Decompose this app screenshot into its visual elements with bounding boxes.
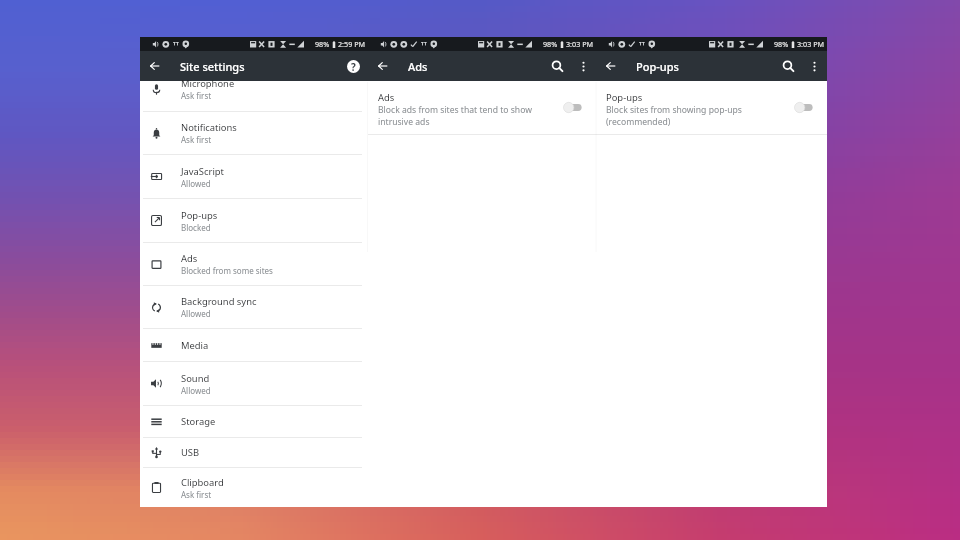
button[interactable]: Pop-ups <box>140 199 368 243</box>
staticText: Media <box>181 339 209 352</box>
staticText: Pop-ups <box>636 59 679 74</box>
staticText: JavaScript <box>181 165 224 178</box>
staticText: Block ads from sites that tend to show <box>378 104 532 116</box>
staticText: Allowed <box>181 308 211 319</box>
button[interactable]: Back <box>368 51 398 81</box>
button[interactable]: Search <box>544 53 570 79</box>
staticText: Blocked <box>181 222 211 233</box>
staticText: 3:03 PM <box>566 39 593 49</box>
staticText: Ads <box>378 91 395 104</box>
staticText: Sound <box>181 372 210 385</box>
button[interactable]: More options <box>570 53 596 79</box>
button[interactable]: Back <box>596 51 626 81</box>
button[interactable]: Notifications <box>140 112 368 155</box>
staticText: Allowed <box>181 178 211 189</box>
staticText: Block sites from showing pop-ups <box>606 104 742 116</box>
staticText: 98% <box>315 39 330 49</box>
staticText: intrusive ads <box>378 116 430 128</box>
button[interactable]: USB <box>140 438 368 468</box>
staticText: Blocked from some sites <box>181 265 273 276</box>
staticText: 98% <box>543 39 558 49</box>
staticText: Ads <box>181 252 198 265</box>
button[interactable]: Clipboard <box>140 468 368 507</box>
button[interactable]: Help <box>338 51 368 81</box>
button[interactable]: Sound <box>140 362 368 406</box>
button[interactable]: More options <box>801 53 827 79</box>
staticText: Ask first <box>181 134 212 145</box>
staticText: Notifications <box>181 121 237 134</box>
button[interactable]: JavaScript <box>140 155 368 199</box>
staticText: USB <box>181 446 200 459</box>
button[interactable]: Media <box>140 329 368 362</box>
staticText: Site settings <box>180 59 245 74</box>
staticText: ? <box>351 60 356 73</box>
staticText: Pop-ups <box>181 209 218 222</box>
staticText: Storage <box>181 415 216 428</box>
button[interactable]: Storage <box>140 406 368 438</box>
button[interactable]: Pop-ups <box>596 81 827 135</box>
staticText: 2:59 PM <box>338 39 365 49</box>
staticText: Ask first <box>181 90 212 101</box>
button[interactable]: Microphone <box>140 81 368 112</box>
staticText: Ads <box>408 59 428 74</box>
staticText: Pop-ups <box>606 91 643 104</box>
staticText: Background sync <box>181 295 257 308</box>
staticText: 3:03 PM <box>797 39 824 49</box>
button[interactable]: Background sync <box>140 286 368 329</box>
button[interactable]: Ads <box>140 243 368 286</box>
staticText: Clipboard <box>181 476 224 489</box>
staticText: (recommended) <box>606 116 671 128</box>
button[interactable]: Back <box>140 51 170 81</box>
button[interactable]: Search <box>775 53 801 79</box>
button[interactable]: Ads <box>368 81 596 135</box>
staticText: 98% <box>774 39 789 49</box>
staticText: Ask first <box>181 489 212 500</box>
staticText: Allowed <box>181 385 211 396</box>
staticText: Microphone <box>181 77 235 90</box>
